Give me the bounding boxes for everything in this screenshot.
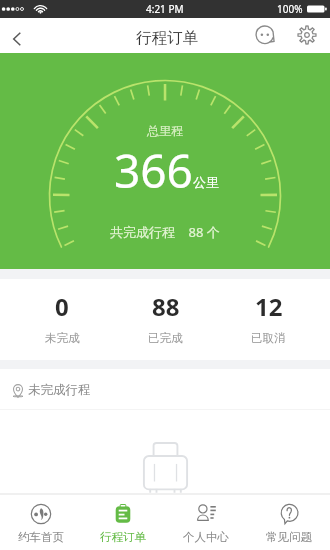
button[interactable]: 常见问题 [247, 495, 330, 550]
staticText: 已完成 [148, 331, 183, 345]
staticText: 12 [255, 290, 283, 323]
staticText: 约车首页 [18, 530, 64, 544]
button[interactable]: 88 [114, 279, 217, 360]
staticText: 已取消 [251, 331, 286, 345]
button[interactable]: 个人中心 [164, 495, 247, 550]
staticText: 88 [152, 290, 180, 323]
staticText: 个人中心 [183, 530, 229, 544]
button[interactable]: 12 [217, 279, 320, 360]
staticText: 共完成行程 88 个 [110, 223, 220, 241]
button[interactable]: 行程订单 [82, 495, 164, 550]
staticText: 366 [114, 139, 193, 202]
staticText: 未完成 [45, 331, 80, 345]
staticText: 100% [277, 2, 303, 16]
button[interactable]: 约车首页 [0, 495, 82, 550]
staticText: 行程订单 [136, 28, 198, 48]
button[interactable]: Settings [290, 18, 324, 53]
staticText: 公里 [193, 174, 219, 190]
button[interactable]: 0 [10, 279, 114, 360]
staticText: 行程订单 [100, 530, 146, 544]
staticText: 4:21 PM [146, 2, 184, 16]
staticText: 总里程 [147, 123, 183, 138]
button[interactable]: Back [0, 18, 36, 53]
staticText: 0 [55, 290, 69, 323]
staticText: 未完成行程 [28, 382, 91, 398]
staticText: 常见问题 [266, 530, 312, 544]
button[interactable]: Messages [249, 18, 283, 53]
